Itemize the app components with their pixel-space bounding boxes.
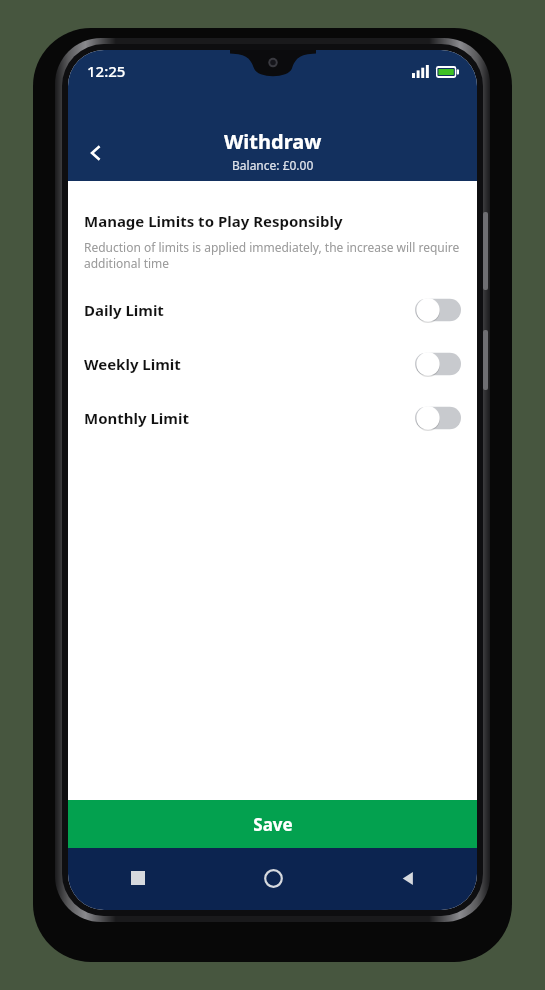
staticText: Monthly Limit bbox=[84, 408, 415, 428]
staticText: Reduction of limits is applied immediate… bbox=[84, 239, 461, 271]
staticText: Save bbox=[253, 813, 293, 836]
button[interactable]: Back bbox=[389, 860, 425, 896]
staticText: Balance: £0.00 bbox=[232, 157, 314, 173]
button[interactable]: Back bbox=[74, 131, 118, 175]
button[interactable]: Home bbox=[255, 860, 291, 896]
staticText: Withdraw bbox=[224, 128, 322, 155]
staticText: 12:25 bbox=[87, 61, 126, 81]
button[interactable]: Save bbox=[68, 800, 477, 848]
staticText: Daily Limit bbox=[84, 300, 415, 320]
button[interactable]: Weekly Limit bbox=[84, 347, 461, 381]
staticText: Weekly Limit bbox=[84, 354, 415, 374]
button[interactable]: Monthly Limit bbox=[84, 401, 461, 435]
staticText: Manage Limits to Play Responsibly bbox=[84, 211, 343, 231]
button[interactable]: Daily Limit bbox=[84, 293, 461, 327]
button[interactable]: Recent apps bbox=[120, 860, 156, 896]
